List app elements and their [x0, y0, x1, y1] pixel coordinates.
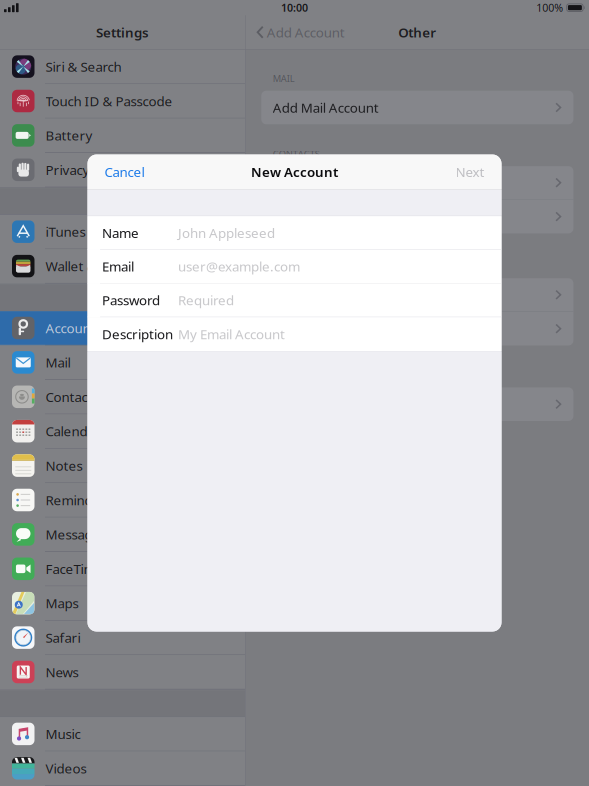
button[interactable]: Mail: [0, 346, 245, 380]
button[interactable]: Siri & Search: [0, 50, 245, 84]
staticText: 100%: [536, 1, 563, 15]
button[interactable]: Add Mail Account: [261, 91, 573, 124]
staticText: Videos: [45, 759, 86, 777]
button[interactable]: Calendar: [0, 414, 245, 449]
button[interactable]: Reminders: [0, 483, 245, 518]
staticText: Add LDAP Account: [273, 174, 387, 191]
staticText: John Appleseed: [178, 224, 275, 242]
button[interactable]: Add macOS Server Account: [261, 387, 573, 421]
staticText: 10:00: [281, 1, 308, 15]
button[interactable]: FaceTime: [0, 552, 245, 586]
staticText: Music: [45, 725, 80, 743]
staticText: Add Subscribed Calendar: [273, 320, 427, 337]
staticText: Battery: [45, 126, 92, 144]
button[interactable]: Accounts & Passwords: [0, 311, 245, 346]
button[interactable]: Privacy: [0, 153, 245, 187]
staticText: Name: [102, 224, 139, 242]
staticText: News: [45, 663, 78, 681]
button[interactable]: Next: [455, 154, 501, 190]
button[interactable]: Contacts: [0, 380, 245, 414]
button[interactable]: Add Subscribed Calendar: [261, 312, 573, 345]
button[interactable]: News: [0, 655, 245, 690]
staticText: Description: [102, 325, 173, 343]
staticText: Next: [455, 163, 484, 181]
staticText: CALENDARS: [273, 260, 326, 272]
staticText: Messages: [45, 525, 106, 543]
button[interactable]: Wallet & Apple Pay: [0, 249, 245, 284]
staticText: Contacts: [45, 388, 98, 406]
staticText: New Account: [251, 163, 338, 181]
button[interactable]: Notes: [0, 449, 245, 483]
staticText: Cancel: [104, 163, 144, 181]
button[interactable]: Add CardDAV Account: [261, 200, 573, 233]
staticText: MAIL: [273, 72, 295, 85]
button[interactable]: Add LDAP Account: [261, 166, 573, 200]
staticText: My Email Account: [178, 325, 285, 343]
button[interactable]: Cancel: [87, 154, 144, 190]
staticText: Siri & Search: [45, 58, 121, 75]
staticText: Calendar: [45, 422, 100, 440]
staticText: FaceTime: [45, 560, 103, 578]
staticText: Safari: [45, 629, 80, 646]
button[interactable]: Maps: [0, 586, 245, 621]
staticText: Mail: [45, 353, 70, 371]
button[interactable]: Battery: [0, 119, 245, 153]
button[interactable]: Add Account: [246, 18, 345, 46]
button[interactable]: Touch ID & Passcode: [0, 84, 245, 119]
staticText: Wallet & Apple Pay: [45, 257, 160, 275]
staticText: Privacy: [45, 161, 89, 179]
button[interactable]: Videos: [0, 751, 245, 786]
staticText: Add Mail Account: [273, 99, 379, 116]
staticText: Add Account: [267, 23, 345, 41]
button[interactable]: Safari: [0, 621, 245, 655]
staticText: iTunes & App Store: [45, 223, 162, 240]
staticText: Password: [102, 291, 160, 309]
staticText: CONTACTS: [273, 148, 320, 160]
staticText: Other: [398, 23, 436, 41]
button[interactable]: Messages: [0, 518, 245, 552]
staticText: Settings: [96, 23, 149, 41]
staticText: Accounts & Passwords: [45, 319, 181, 337]
staticText: Required: [178, 291, 234, 309]
staticText: Reminders: [45, 491, 112, 509]
button[interactable]: Music: [0, 717, 245, 751]
staticText: Email: [102, 258, 134, 275]
staticText: user@example.com: [178, 258, 300, 275]
staticText: Maps: [45, 594, 78, 612]
staticText: Notes: [45, 457, 82, 474]
staticText: Add CardDAV Account: [273, 208, 407, 225]
button[interactable]: iTunes & App Store: [0, 215, 245, 249]
staticText: Touch ID & Passcode: [45, 92, 172, 110]
button[interactable]: Add CalDAV Account: [261, 278, 573, 312]
